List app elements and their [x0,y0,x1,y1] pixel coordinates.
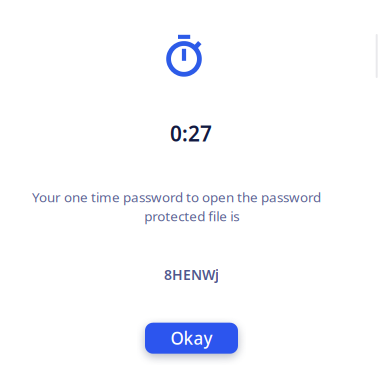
staticText: Okay [170,327,212,350]
staticText: 0:27 [170,119,212,148]
staticText: 8HENWj [164,265,219,284]
staticText: Your one time password to open the passw… [32,188,321,206]
button[interactable]: Okay [145,323,238,354]
staticText: protected file is [144,207,239,225]
